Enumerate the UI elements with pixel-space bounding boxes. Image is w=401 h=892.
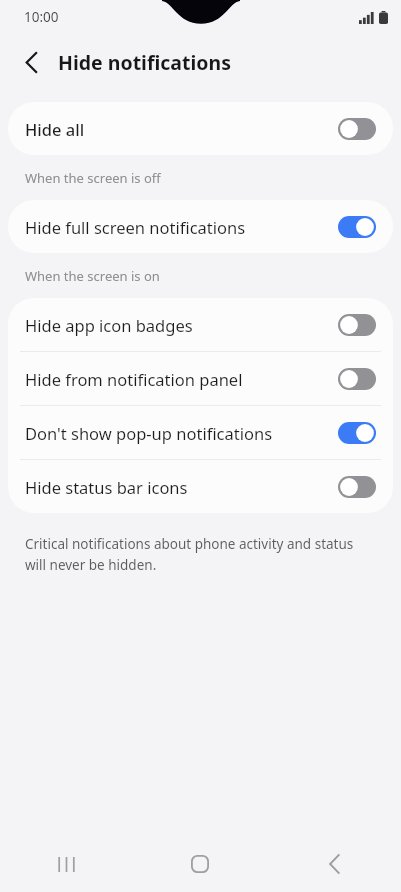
button[interactable]: Recents bbox=[0, 836, 133, 892]
button[interactable]: Hide app icon badges bbox=[8, 298, 393, 351]
button[interactable]: Back bbox=[14, 45, 48, 79]
button[interactable]: Home bbox=[133, 836, 267, 892]
button[interactable]: Hide full screen notifications bbox=[8, 200, 393, 253]
staticText: When the screen is off bbox=[25, 169, 381, 187]
button[interactable]: Back bbox=[267, 836, 401, 892]
staticText: When the screen is on bbox=[25, 267, 381, 285]
staticText: Critical notifications about phone activ… bbox=[25, 535, 371, 574]
staticText: Hide notifications bbox=[58, 49, 231, 76]
button[interactable]: Hide from notification panel bbox=[8, 352, 393, 405]
staticText: Hide from notification panel bbox=[25, 368, 243, 390]
staticText: Hide full screen notifications bbox=[25, 216, 246, 238]
staticText: 10:00 bbox=[24, 8, 59, 26]
button[interactable]: Hide all bbox=[8, 102, 393, 155]
button[interactable]: Don't show pop-up notifications bbox=[8, 406, 393, 459]
staticText: Hide status bar icons bbox=[25, 476, 188, 498]
staticText: Don't show pop-up notifications bbox=[25, 422, 273, 444]
button[interactable]: Hide status bar icons bbox=[8, 460, 393, 513]
staticText: Hide all bbox=[25, 118, 85, 140]
staticText: Hide app icon badges bbox=[25, 314, 193, 336]
